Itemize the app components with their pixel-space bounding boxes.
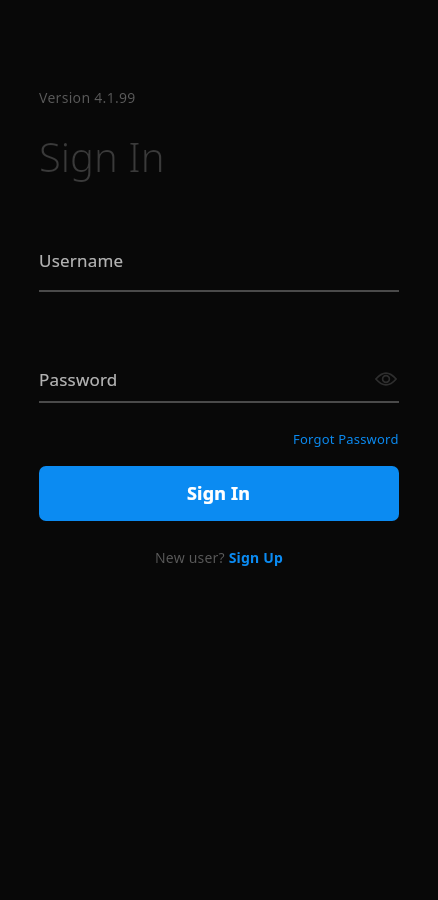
staticText: Username <box>39 249 124 272</box>
staticText: Sign In <box>39 129 165 183</box>
staticText: Forgot Password <box>293 430 399 448</box>
staticText: New user? Sign Up <box>155 548 283 567</box>
button[interactable]: Sign In <box>39 466 399 521</box>
staticText: Version 4.1.99 <box>39 88 136 107</box>
staticText: Sign In <box>187 481 251 506</box>
button[interactable]: Username <box>39 249 399 292</box>
staticText: Password <box>39 368 373 391</box>
button[interactable]: Forgot Password <box>293 430 399 448</box>
button[interactable]: Password <box>39 366 399 392</box>
button[interactable]: New user? Sign Up <box>155 548 283 567</box>
button[interactable]: Show password <box>373 366 399 392</box>
